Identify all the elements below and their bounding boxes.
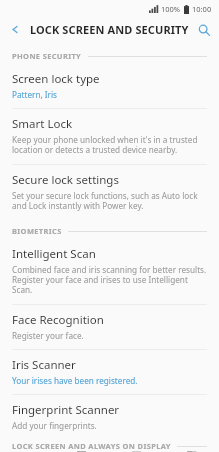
- staticText: 100%: [161, 4, 181, 14]
- staticText: Intelligent Scan: [12, 246, 96, 262]
- staticText: 10:00: [192, 4, 212, 14]
- staticText: Set your secure lock functions, such as …: [12, 190, 207, 212]
- button[interactable]: Smart Lock: [0, 109, 219, 164]
- staticText: BIOMETRICS: [12, 226, 62, 236]
- staticText: Smart Lock: [12, 116, 73, 132]
- button[interactable]: Secure lock settings: [0, 165, 219, 221]
- staticText: Face Recognition: [12, 312, 104, 328]
- staticText: Combined face and iris scanning for bett…: [12, 264, 207, 296]
- staticText: PHONE SECURITY: [12, 51, 82, 61]
- staticText: Screen lock type: [12, 71, 100, 87]
- button[interactable]: Fingerprint Scanner: [0, 395, 219, 440]
- button[interactable]: Face Recognition: [0, 305, 219, 349]
- staticText: Iris Scanner: [12, 357, 76, 373]
- button[interactable]: Back: [0, 17, 30, 42]
- staticText: LOCK SCREEN AND SECURITY: [30, 22, 189, 37]
- button[interactable]: Search: [189, 17, 219, 42]
- button[interactable]: Screen lock type: [0, 66, 219, 108]
- staticText: Keep your phone unlocked when it's in a …: [12, 134, 207, 156]
- staticText: Pattern, Iris: [12, 89, 58, 100]
- staticText: Register your face.: [12, 330, 84, 341]
- staticText: Secure lock settings: [12, 172, 119, 188]
- staticText: Add your fingerprints.: [12, 420, 97, 431]
- button[interactable]: Intelligent Scan: [0, 241, 219, 304]
- staticText: LOCK SCREEN AND ALWAYS ON DISPLAY: [12, 441, 171, 451]
- staticText: Fingerprint Scanner: [12, 402, 120, 418]
- staticText: Your irises have been registered.: [12, 375, 138, 386]
- button[interactable]: Iris Scanner: [0, 350, 219, 394]
